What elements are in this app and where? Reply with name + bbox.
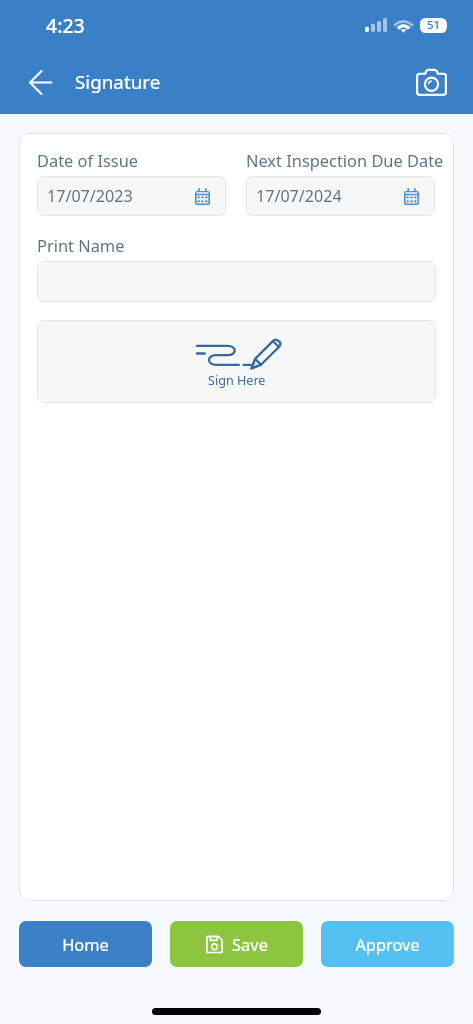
button[interactable]: 17/07/2023	[37, 176, 226, 216]
staticText: Sign Here	[208, 372, 266, 389]
staticText: 4:23	[46, 12, 85, 39]
staticText: 51	[427, 17, 441, 33]
button[interactable]: 17/07/2024	[246, 176, 435, 216]
button[interactable]: Approve	[321, 921, 454, 967]
button[interactable]: Home	[19, 921, 152, 967]
staticText: 17/07/2024	[256, 185, 342, 207]
button[interactable]: Back	[23, 65, 57, 99]
staticText: Date of Issue	[37, 149, 139, 171]
button[interactable]: Save	[170, 921, 303, 967]
staticText: 17/07/2023	[47, 185, 133, 207]
staticText: Home	[62, 933, 109, 955]
button[interactable]: Sign Here	[37, 320, 436, 403]
staticText: Print Name	[37, 234, 125, 256]
staticText: Next Inspection Due Date	[246, 149, 444, 171]
staticText: Save	[232, 933, 268, 955]
button[interactable]: Print Name input	[37, 261, 436, 302]
staticText: Approve	[355, 933, 420, 955]
button[interactable]: Take photo	[412, 63, 450, 101]
staticText: Signature	[75, 69, 161, 95]
